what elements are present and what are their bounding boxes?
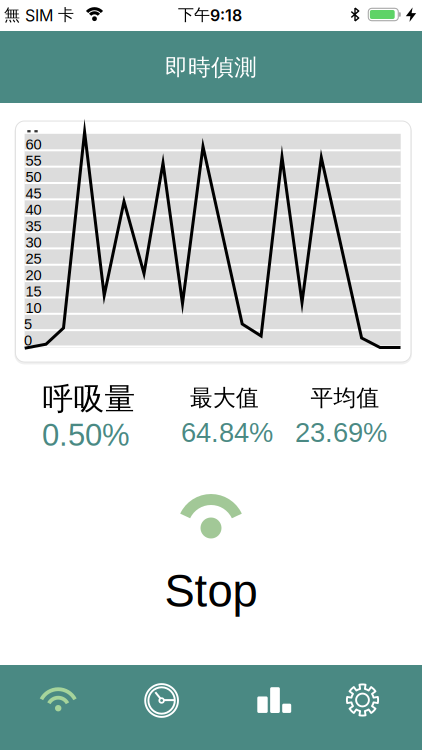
staticText: 45 [25, 185, 41, 202]
staticText: 35 [25, 218, 41, 234]
staticText: 10 [25, 300, 41, 316]
staticText: 50 [25, 169, 41, 185]
staticText: 即時偵測 [165, 54, 257, 81]
staticText: Stop [164, 566, 257, 616]
button[interactable]: 歷史記錄 [105, 665, 211, 750]
staticText: 最大值 [190, 384, 259, 412]
button[interactable]: Stop [105, 440, 316, 620]
staticText: 0 [24, 332, 32, 349]
staticText: 23.69% [295, 417, 387, 448]
staticText: 64.84% [181, 417, 273, 448]
button[interactable]: 設定 [316, 665, 422, 750]
staticText: 下午9:18 [178, 5, 242, 25]
staticText: 5 [24, 316, 32, 332]
button[interactable]: 即時偵測 [0, 665, 105, 750]
staticText: 40 [25, 201, 41, 218]
staticText: 平均值 [310, 384, 379, 412]
staticText: 30 [25, 234, 41, 251]
staticText: 呼吸量 [42, 380, 135, 418]
staticText: 25 [25, 251, 41, 267]
staticText: 無 SIM 卡 [4, 5, 74, 25]
staticText: 20 [25, 267, 41, 283]
button[interactable]: 統計 [211, 665, 316, 750]
staticText: 60 [25, 136, 41, 152]
staticText: 15 [25, 283, 41, 300]
staticText: 0.50% [42, 418, 130, 452]
staticText: 55 [25, 152, 41, 169]
